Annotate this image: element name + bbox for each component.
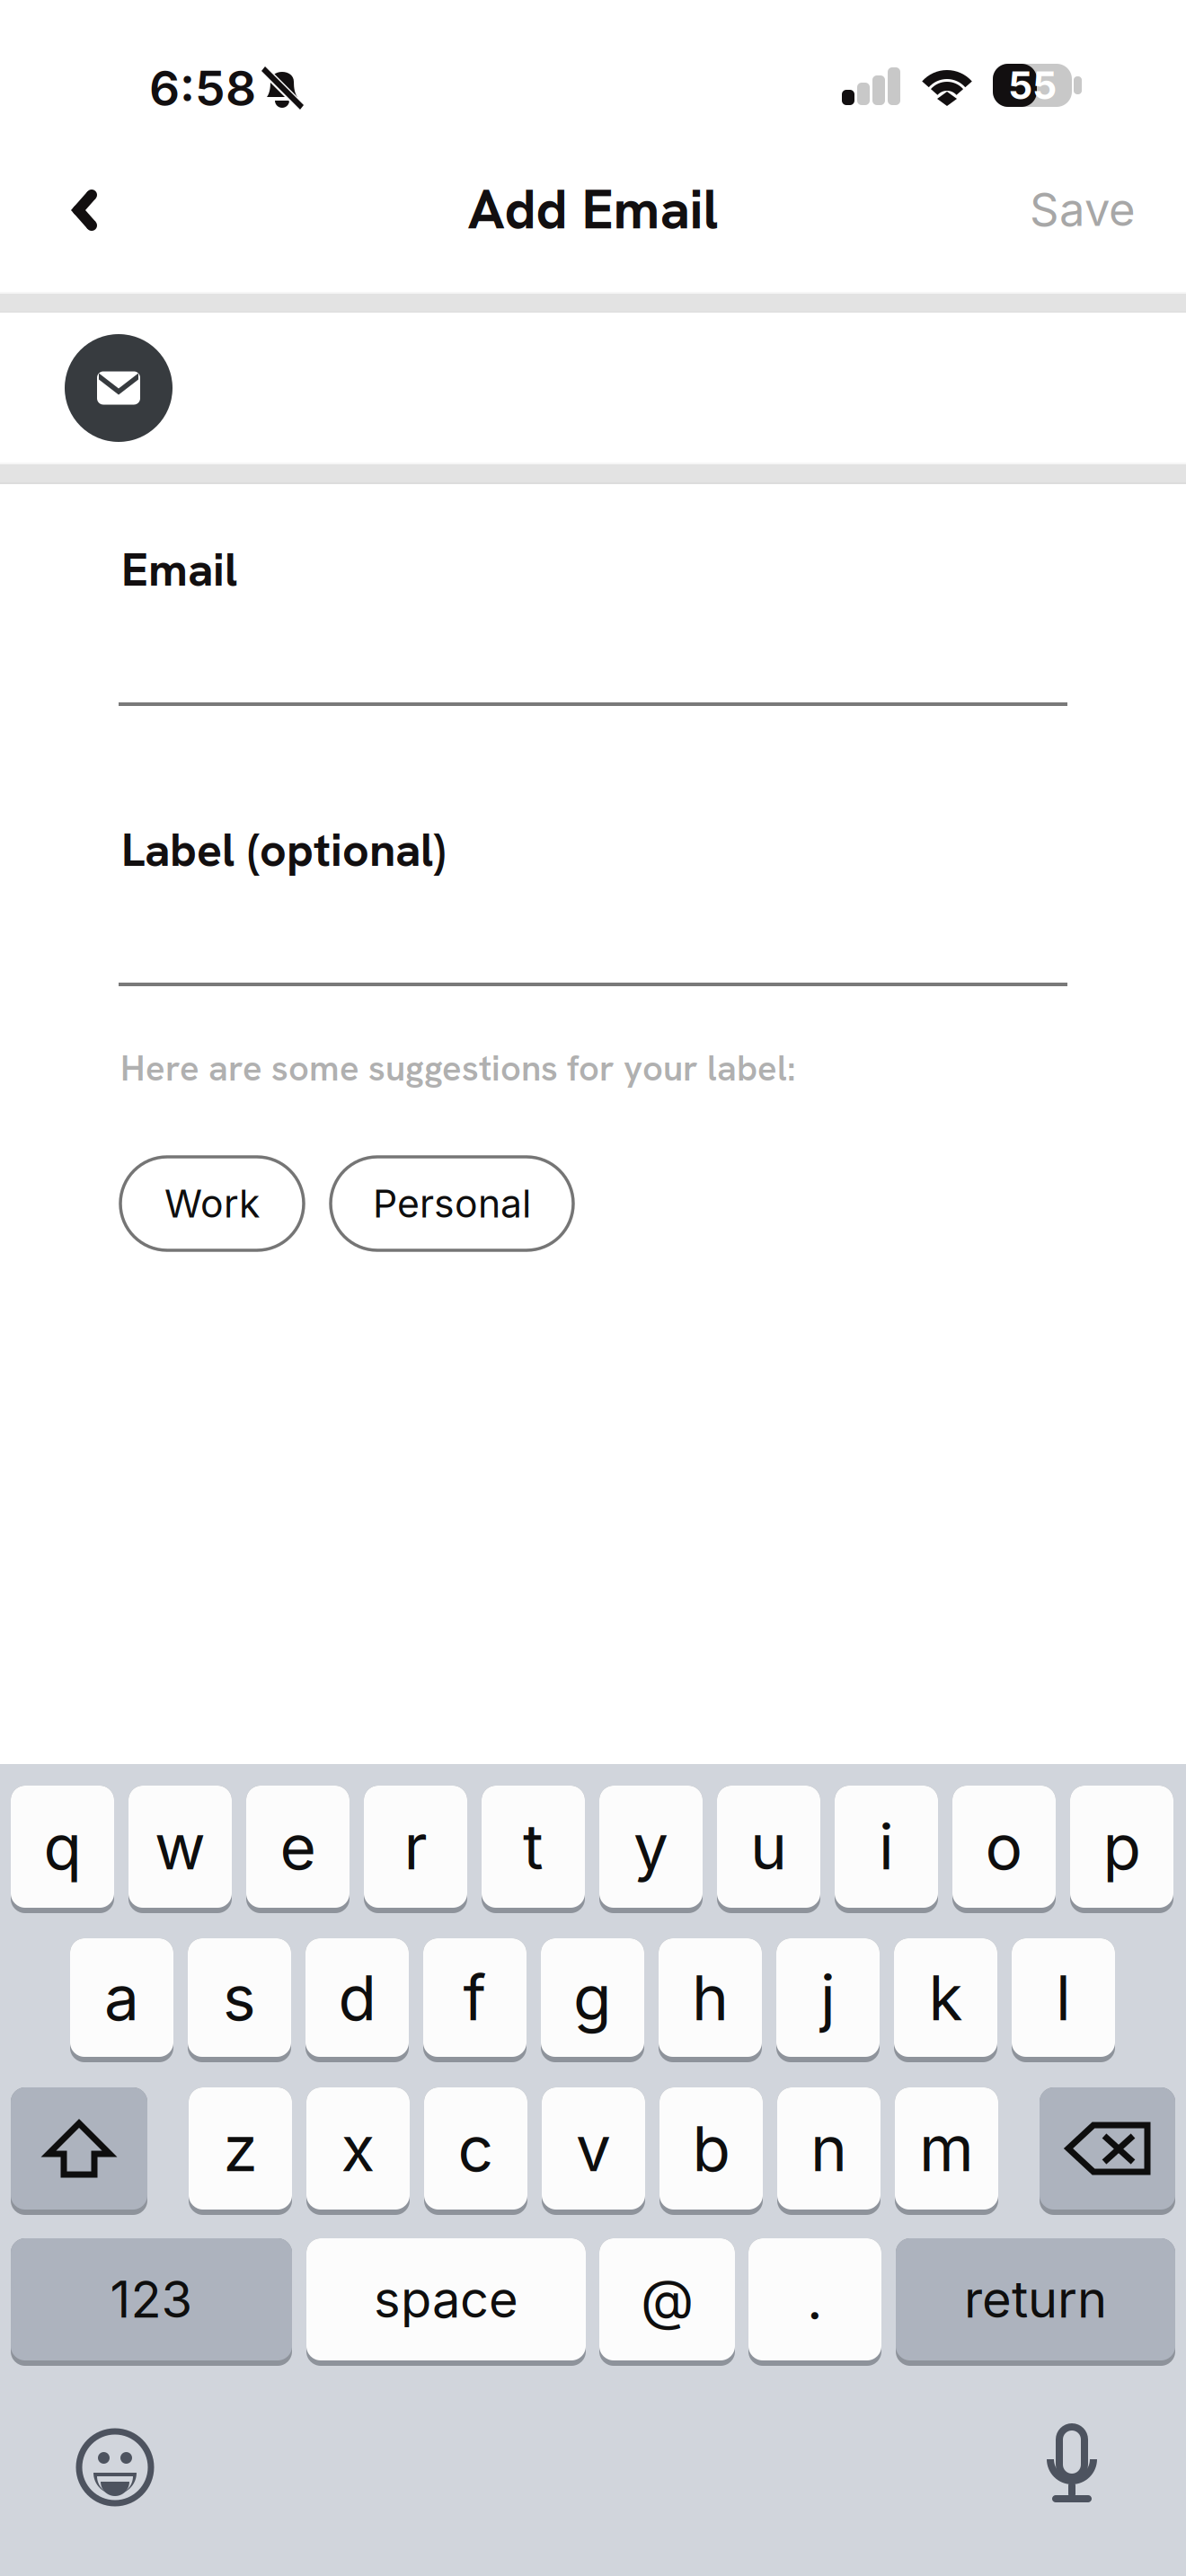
staticText: y	[633, 1809, 668, 1884]
button[interactable]: o	[952, 1786, 1056, 1913]
button[interactable]: Work	[120, 1157, 304, 1250]
button[interactable]: z	[189, 2087, 292, 2215]
button[interactable]: u	[717, 1786, 820, 1913]
staticText: Personal	[373, 1180, 531, 1227]
staticText: 55	[1008, 62, 1057, 109]
button[interactable]: return	[896, 2238, 1175, 2366]
button[interactable]: s	[188, 1938, 291, 2062]
button[interactable]: m	[895, 2087, 998, 2215]
button[interactable]: d	[305, 1938, 409, 2062]
staticText: k	[929, 1960, 963, 2035]
staticText: h	[692, 1960, 729, 2035]
staticText: Here are some suggestions for your label…	[120, 1045, 796, 1091]
button[interactable]: w	[128, 1786, 232, 1913]
button[interactable]: v	[542, 2087, 645, 2215]
staticText: b	[692, 2111, 730, 2186]
staticText: 6:58	[149, 59, 256, 117]
button[interactable]: h	[659, 1938, 762, 2062]
staticText: d	[338, 1960, 376, 2035]
button[interactable]: Delete	[1040, 2087, 1175, 2215]
staticText: g	[573, 1960, 612, 2035]
staticText: r	[404, 1809, 427, 1884]
staticText: return	[964, 2269, 1107, 2330]
staticText: z	[223, 2111, 257, 2186]
button[interactable]: g	[541, 1938, 644, 2062]
button[interactable]: i	[835, 1786, 938, 1913]
button[interactable]: Emoji keyboard	[79, 2431, 151, 2503]
button[interactable]: Dictation	[1047, 2427, 1097, 2504]
staticText: Add Email	[468, 173, 718, 245]
button[interactable]: j	[776, 1938, 880, 2062]
button[interactable]: Save	[987, 162, 1179, 257]
button[interactable]: q	[11, 1786, 114, 1913]
staticText: n	[810, 2111, 847, 2186]
staticText: c	[458, 2111, 494, 2186]
staticText: w	[155, 1809, 206, 1884]
staticText: 123	[110, 2269, 193, 2330]
staticText: j	[820, 1960, 836, 2035]
button[interactable]: .	[748, 2238, 881, 2366]
button[interactable]: n	[777, 2087, 881, 2215]
staticText: Save	[1030, 182, 1136, 237]
button[interactable]: k	[894, 1938, 997, 2062]
staticText: v	[576, 2111, 611, 2186]
staticText: Work	[164, 1180, 260, 1227]
staticText: q	[44, 1809, 81, 1884]
button[interactable]: f	[423, 1938, 527, 2062]
button[interactable]: l	[1012, 1938, 1115, 2062]
staticText: e	[280, 1809, 316, 1884]
staticText: f	[463, 1960, 487, 2035]
button[interactable]: c	[424, 2087, 527, 2215]
button[interactable]: Back	[34, 161, 142, 269]
button[interactable]: Personal	[331, 1157, 573, 1250]
button[interactable]: e	[246, 1786, 350, 1913]
staticText: x	[341, 2111, 375, 2186]
button[interactable]: p	[1070, 1786, 1173, 1913]
staticText: m	[919, 2111, 974, 2186]
button[interactable]: Email type	[65, 334, 173, 442]
staticText: o	[985, 1809, 1023, 1884]
staticText: s	[223, 1960, 256, 2035]
staticText: a	[104, 1960, 139, 2035]
button[interactable]: y	[599, 1786, 703, 1913]
button[interactable]: r	[364, 1786, 467, 1913]
button[interactable]: a	[70, 1938, 173, 2062]
button[interactable]: space	[306, 2238, 586, 2366]
staticText: .	[807, 2266, 823, 2333]
staticText: l	[1056, 1960, 1071, 2035]
button[interactable]: b	[659, 2087, 763, 2215]
staticText: space	[374, 2269, 518, 2330]
button[interactable]: t	[482, 1786, 585, 1913]
staticText: i	[879, 1809, 894, 1884]
staticText: Label (optional)	[121, 819, 446, 880]
staticText: p	[1103, 1809, 1141, 1884]
staticText: t	[523, 1809, 544, 1884]
staticText: @	[641, 2266, 694, 2333]
button[interactable]: 123	[11, 2238, 292, 2366]
button[interactable]: @	[599, 2238, 735, 2366]
staticText: u	[750, 1809, 787, 1884]
button[interactable]: x	[306, 2087, 410, 2215]
button[interactable]: Shift	[11, 2087, 147, 2215]
staticText: Email	[121, 539, 237, 600]
